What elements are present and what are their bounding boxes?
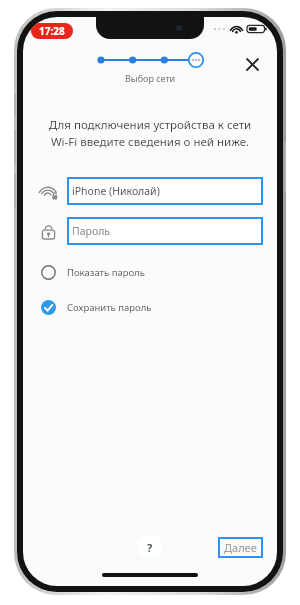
staticText: Показать пароль bbox=[67, 266, 145, 279]
button[interactable]: Закрыть bbox=[239, 51, 265, 77]
button[interactable]: Пароль bbox=[67, 217, 263, 245]
button[interactable]: iPhone (Николай) bbox=[67, 177, 263, 205]
button[interactable]: Сохранить пароль bbox=[35, 294, 263, 320]
button[interactable]: Показать пароль bbox=[35, 259, 263, 285]
staticText: Для подключения устройства к сети Wi-Fi … bbox=[41, 117, 259, 149]
staticText: Далее bbox=[224, 540, 257, 555]
staticText: iPhone (Николай) bbox=[72, 184, 160, 198]
staticText: Выбор сети bbox=[125, 72, 176, 84]
staticText: Сохранить пароль bbox=[67, 301, 152, 314]
button[interactable]: Справка bbox=[138, 535, 162, 559]
staticText: Пароль bbox=[72, 224, 111, 238]
staticText: ? bbox=[147, 540, 153, 555]
staticText: 17:28 bbox=[39, 24, 65, 38]
button[interactable]: Далее bbox=[224, 540, 257, 555]
